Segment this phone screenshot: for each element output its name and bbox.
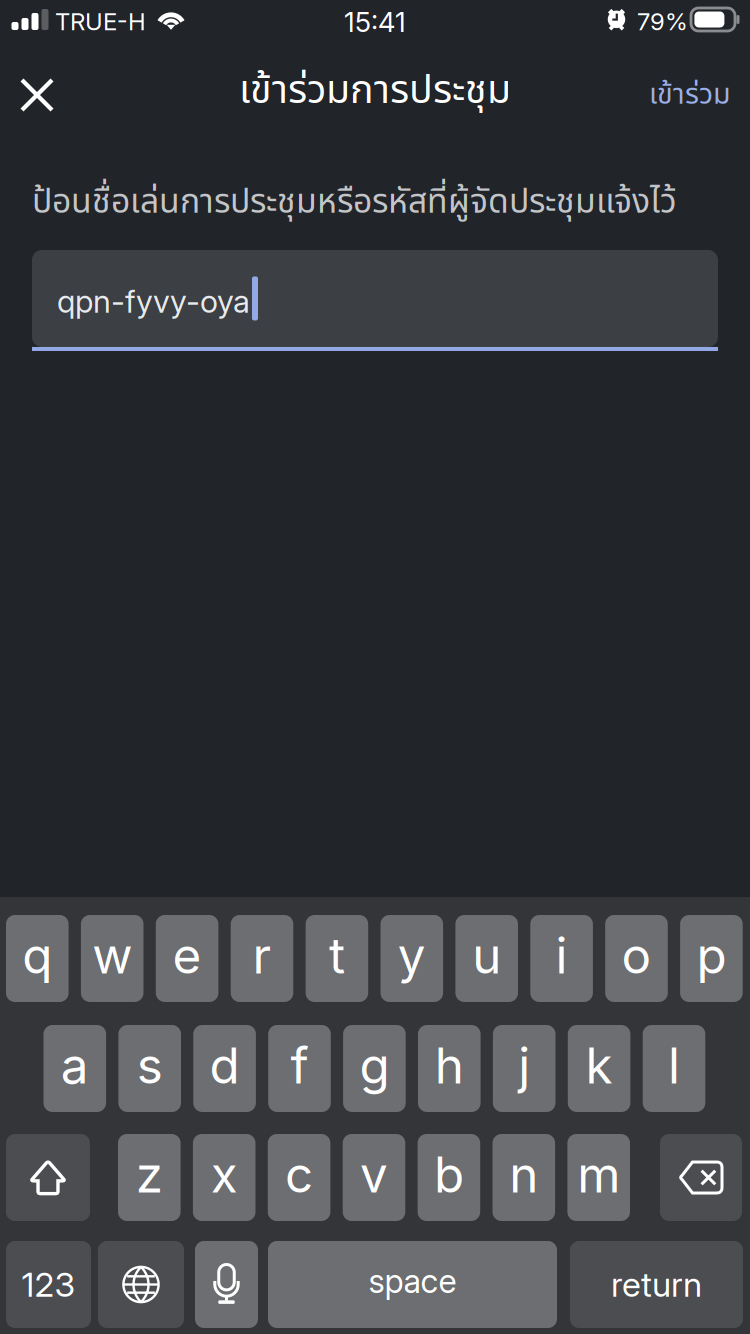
button[interactable]: c	[268, 1134, 330, 1221]
staticText: y	[398, 926, 426, 985]
staticText: w	[92, 926, 132, 985]
button[interactable]: y	[380, 915, 443, 1002]
button[interactable]: k	[568, 1025, 630, 1112]
button[interactable]: Shift	[6, 1134, 90, 1221]
staticText: g	[359, 1036, 389, 1095]
button[interactable]: return	[570, 1241, 743, 1328]
staticText: TRUE-H	[55, 7, 146, 36]
staticText: j	[518, 1036, 530, 1095]
staticText: u	[472, 926, 501, 985]
staticText: 123	[21, 1264, 75, 1305]
staticText: เข้าร่วม	[649, 73, 731, 117]
staticText: k	[586, 1036, 613, 1095]
staticText: l	[668, 1036, 680, 1095]
button[interactable]: s	[118, 1025, 181, 1112]
staticText: return	[611, 1264, 702, 1305]
button[interactable]: w	[81, 915, 143, 1002]
staticText: d	[210, 1036, 240, 1095]
button[interactable]: f	[268, 1025, 331, 1112]
staticText: e	[173, 926, 202, 985]
button[interactable]: x	[193, 1134, 255, 1221]
staticText: 79%	[637, 7, 688, 36]
button[interactable]: v	[343, 1134, 405, 1221]
staticText: b	[434, 1145, 464, 1204]
staticText: 15:41	[344, 5, 406, 39]
staticText: v	[360, 1145, 388, 1204]
button[interactable]: a	[43, 1025, 106, 1112]
button[interactable]: เข้าร่วม	[648, 55, 750, 135]
staticText: a	[61, 1036, 89, 1095]
staticText: t	[329, 926, 345, 985]
button[interactable]: b	[418, 1134, 480, 1221]
button[interactable]: u	[455, 915, 518, 1002]
staticText: h	[435, 1036, 464, 1095]
button[interactable]: m	[567, 1134, 630, 1221]
button[interactable]: o	[605, 915, 668, 1002]
staticText: f	[290, 1036, 308, 1095]
button[interactable]: 123	[6, 1241, 91, 1328]
button[interactable]: Delete	[660, 1134, 742, 1221]
staticText: space	[368, 1261, 456, 1301]
staticText: s	[137, 1036, 163, 1095]
staticText: o	[621, 926, 651, 985]
staticText: ป้อนชื่อเล่นการประชุมหรือรหัสที่ผู้จัดปร…	[32, 177, 677, 228]
staticText: z	[136, 1145, 163, 1204]
button[interactable]: z	[118, 1134, 181, 1221]
button[interactable]: g	[343, 1025, 406, 1112]
staticText: r	[252, 926, 271, 985]
button[interactable]: j	[493, 1025, 555, 1112]
staticText: c	[285, 1145, 313, 1204]
staticText: i	[556, 926, 568, 985]
button[interactable]: i	[530, 915, 593, 1002]
button[interactable]: r	[231, 915, 293, 1002]
button[interactable]: h	[418, 1025, 481, 1112]
staticText: เข้าร่วมการประชุม	[239, 61, 511, 121]
staticText: q	[22, 926, 52, 985]
button[interactable]: t	[306, 915, 368, 1002]
staticText: p	[696, 926, 726, 985]
staticText: n	[509, 1145, 538, 1204]
button[interactable]: Close	[0, 55, 74, 135]
staticText: m	[577, 1145, 620, 1204]
staticText: qpn-fyvy-oya	[57, 282, 250, 320]
button[interactable]: d	[193, 1025, 256, 1112]
button[interactable]: Dictate	[195, 1241, 258, 1328]
button[interactable]: p	[680, 915, 743, 1002]
button[interactable]: q	[6, 915, 69, 1002]
button[interactable]: e	[156, 915, 218, 1002]
button[interactable]: Change keyboard	[98, 1241, 184, 1328]
button[interactable]: n	[492, 1134, 555, 1221]
staticText: x	[211, 1145, 238, 1204]
button[interactable]: space	[268, 1241, 557, 1328]
button[interactable]: l	[643, 1025, 705, 1112]
